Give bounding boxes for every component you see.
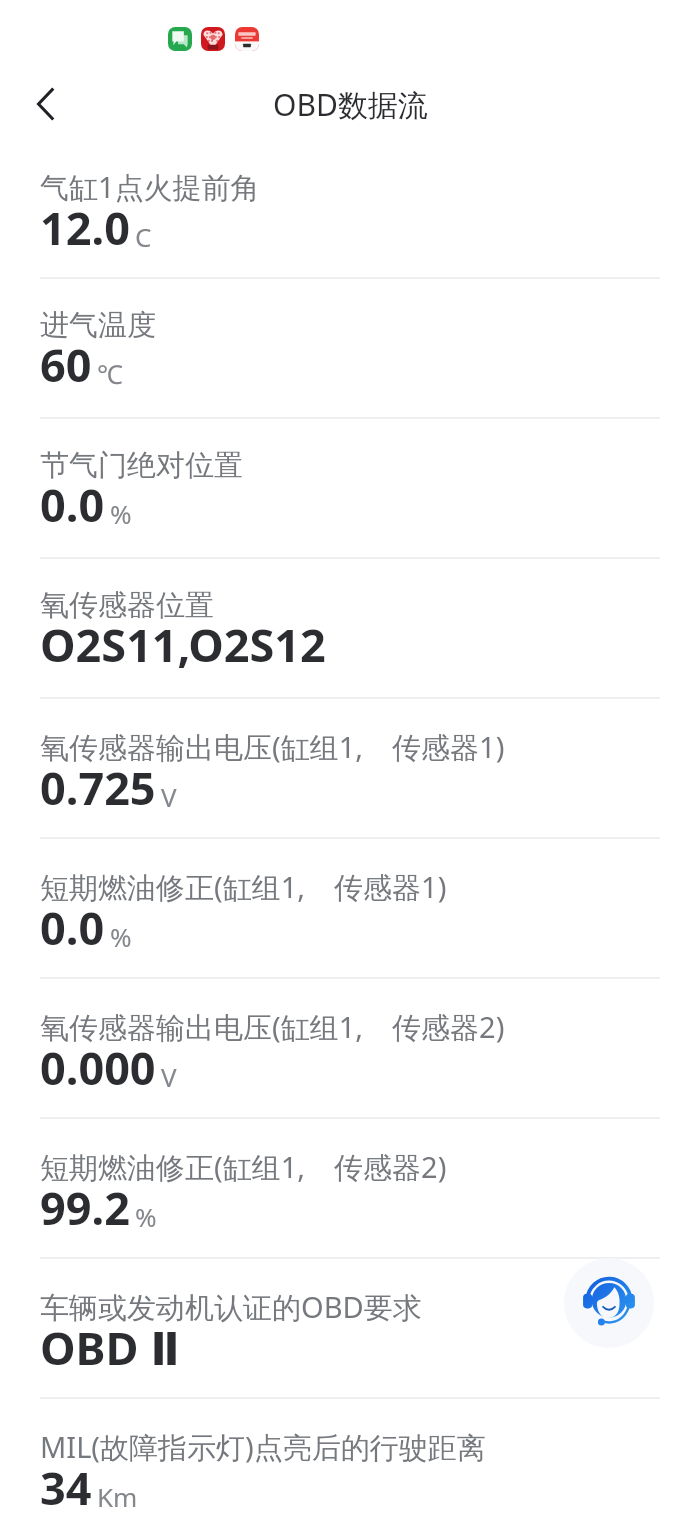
staticText: C bbox=[135, 219, 152, 254]
staticText: 氧传感器输出电压(缸组1, 传感器1) bbox=[40, 727, 505, 767]
button[interactable]: 气缸1点火提前角 bbox=[0, 139, 700, 279]
staticText: Km bbox=[97, 1479, 138, 1514]
button[interactable]: 氧传感器输出电压(缸组1, 传感器1) bbox=[0, 699, 700, 839]
button[interactable]: Back bbox=[5, 68, 85, 139]
staticText: OBD数据流 bbox=[273, 84, 428, 125]
button[interactable]: 短期燃油修正(缸组1, 传感器1) bbox=[0, 839, 700, 979]
staticText: O2S11,O2S12 bbox=[40, 614, 326, 675]
staticText: 节气门绝对位置 bbox=[40, 447, 243, 484]
button[interactable]: 进气温度 bbox=[0, 279, 700, 419]
button[interactable]: 节气门绝对位置 bbox=[0, 419, 700, 559]
button[interactable]: Customer service bbox=[564, 1258, 654, 1348]
staticText: % bbox=[110, 496, 132, 531]
button[interactable]: 短期燃油修正(缸组1, 传感器2) bbox=[0, 1119, 700, 1259]
staticText: 60 bbox=[40, 334, 92, 395]
staticText: OBD Ⅱ bbox=[40, 1317, 180, 1378]
staticText: 0.0 bbox=[40, 897, 105, 958]
staticText: 短期燃油修正(缸组1, 传感器1) bbox=[40, 867, 447, 907]
button[interactable]: 车辆或发动机认证的OBD要求 bbox=[0, 1259, 700, 1399]
staticText: % bbox=[110, 919, 132, 954]
staticText: 0.0 bbox=[40, 474, 105, 535]
button[interactable]: 氧传感器输出电压(缸组1, 传感器2) bbox=[0, 979, 700, 1119]
staticText: 0.725 bbox=[40, 757, 156, 818]
staticText: 气缸1点火提前角 bbox=[40, 167, 260, 207]
button[interactable]: MIL(故障指示灯)点亮后的行驶距离 bbox=[0, 1399, 700, 1539]
button[interactable]: 氧传感器位置 bbox=[0, 559, 700, 699]
staticText: V bbox=[161, 779, 177, 814]
staticText: 车辆或发动机认证的OBD要求 bbox=[40, 1287, 422, 1327]
staticText: 99.2 bbox=[40, 1177, 130, 1238]
staticText: 氧传感器输出电压(缸组1, 传感器2) bbox=[40, 1007, 505, 1047]
staticText: V bbox=[161, 1059, 177, 1094]
staticText: 短期燃油修正(缸组1, 传感器2) bbox=[40, 1147, 447, 1187]
staticText: 进气温度 bbox=[40, 307, 156, 344]
staticText: MIL(故障指示灯)点亮后的行驶距离 bbox=[40, 1427, 486, 1467]
staticText: 34 bbox=[40, 1457, 92, 1518]
staticText: 氧传感器位置 bbox=[40, 587, 214, 624]
staticText: ℃ bbox=[97, 356, 123, 391]
staticText: 12.0 bbox=[40, 197, 130, 258]
staticText: % bbox=[135, 1199, 157, 1234]
staticText: 0.000 bbox=[40, 1037, 156, 1098]
